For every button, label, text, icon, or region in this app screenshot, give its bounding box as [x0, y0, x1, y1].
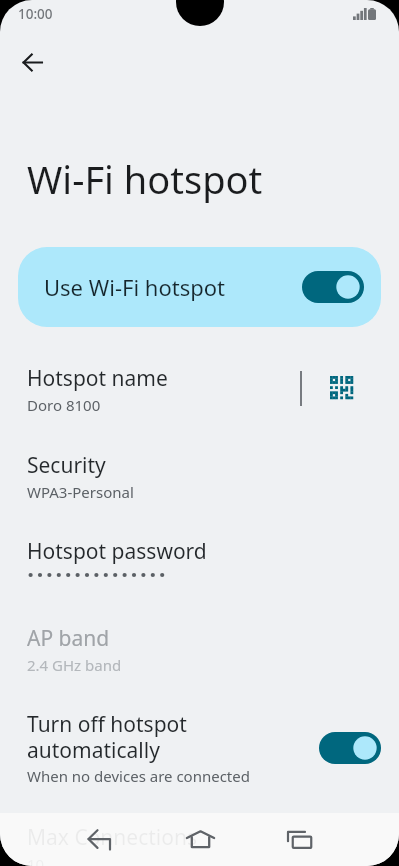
staticText: 10 — [27, 854, 45, 866]
staticText: 10:00 — [18, 5, 53, 23]
button[interactable]: Hotspot password — [0, 523, 399, 595]
staticText: Doro 8100 — [27, 395, 101, 415]
staticText: AP band — [27, 624, 110, 653]
button[interactable]: Security — [0, 437, 399, 509]
staticText: Security — [27, 451, 106, 480]
staticText: Wi-Fi hotspot — [27, 153, 263, 205]
staticText: Hotspot name — [27, 364, 168, 393]
button[interactable]: Navigate up — [9, 39, 55, 85]
staticText: WPA3-Personal — [27, 482, 134, 502]
button[interactable]: Share hotspot QR code — [319, 365, 363, 409]
staticText: 2.4 GHz band — [27, 655, 122, 675]
staticText: When no devices are connected — [27, 766, 250, 786]
staticText: Turn off hotspot automatically — [27, 710, 277, 764]
staticText: Use Wi-Fi hotspot — [44, 272, 225, 302]
staticText: Hotspot password — [27, 537, 207, 566]
button[interactable]: Back — [65, 813, 133, 866]
button[interactable]: Use Wi-Fi hotspot — [18, 247, 381, 327]
button[interactable]: Max Connections — [0, 809, 399, 866]
button[interactable]: Turn off hotspot automatically — [0, 696, 399, 792]
button[interactable]: Home — [166, 813, 234, 866]
staticText: Max Connections — [27, 823, 197, 852]
button[interactable]: Recent apps — [265, 813, 333, 866]
button[interactable]: Hotspot name — [0, 350, 399, 422]
